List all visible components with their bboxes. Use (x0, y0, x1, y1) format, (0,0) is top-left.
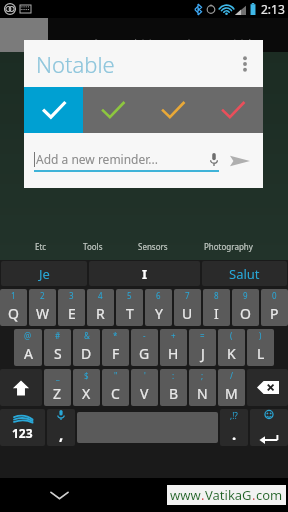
staticText: 0 (272, 290, 277, 301)
button[interactable]: Priority (24, 87, 83, 133)
staticText: - (143, 330, 146, 341)
button[interactable]: 5 (116, 289, 143, 326)
staticText: 123 (12, 425, 33, 441)
button[interactable]: 4 (87, 289, 114, 326)
staticText: ) (259, 330, 262, 341)
button[interactable]: _ (44, 369, 71, 406)
staticText: Add a new reminder... (36, 151, 210, 167)
staticText: Tools (83, 241, 103, 252)
button[interactable]: - (131, 329, 158, 366)
button[interactable]: & (73, 329, 100, 366)
button[interactable]: Je (1, 261, 87, 286)
button[interactable]: # (44, 329, 71, 366)
staticText: / (230, 370, 233, 381)
staticText: = (200, 330, 205, 341)
staticText: P (270, 304, 279, 323)
button[interactable]: / (218, 369, 245, 406)
staticText: 4 (98, 290, 103, 301)
staticText: _ (56, 370, 60, 381)
staticText: + (171, 330, 176, 341)
staticText: K (227, 344, 236, 363)
button[interactable]: Priority (203, 87, 263, 133)
staticText: 6 (156, 290, 161, 301)
staticText: L (257, 344, 265, 363)
staticText: J (201, 344, 205, 363)
staticText: 3 (69, 290, 74, 301)
staticText: . (232, 424, 237, 444)
button[interactable]: 0 (261, 289, 288, 326)
button[interactable]: Hide keyboard (44, 480, 74, 510)
staticText: Y (155, 304, 163, 323)
staticText: T (126, 304, 134, 323)
button[interactable]: Priority (83, 87, 143, 133)
staticText: 8 (214, 290, 219, 301)
button[interactable]: Shift (0, 369, 42, 406)
staticText: " (114, 370, 118, 381)
staticText: ( (230, 330, 233, 341)
button[interactable]: 1 (0, 289, 27, 326)
staticText: X (82, 384, 91, 403)
button[interactable]: = (189, 329, 216, 366)
staticText: ,!? (230, 410, 238, 421)
staticText: www (170, 486, 201, 504)
staticText: H (168, 344, 179, 363)
staticText: S (54, 344, 62, 363)
staticText: U (182, 304, 193, 323)
button[interactable]: , (47, 409, 75, 446)
staticText: VatikaG (205, 486, 252, 504)
staticText: Z (53, 384, 62, 403)
staticText: V (140, 384, 149, 403)
staticText: B (169, 384, 179, 403)
button[interactable]: More options (231, 50, 259, 78)
button[interactable]: 8 (203, 289, 230, 326)
button[interactable]: 7 (174, 289, 201, 326)
button[interactable]: ) (247, 329, 274, 366)
button[interactable]: 123 (0, 409, 45, 446)
button[interactable]: : (160, 369, 187, 406)
button[interactable]: " (102, 369, 129, 406)
staticText: @ (24, 330, 32, 341)
staticText: . (201, 486, 205, 504)
button[interactable]: $ (73, 369, 100, 406)
staticText: I (142, 265, 148, 283)
button[interactable]: 3 (58, 289, 85, 326)
staticText: G (139, 344, 150, 363)
button[interactable]: Priority (143, 87, 203, 133)
button[interactable]: 2 (29, 289, 56, 326)
staticText: Notable (36, 49, 115, 79)
staticText: R (96, 304, 105, 323)
button[interactable]: @ (14, 329, 42, 366)
button[interactable]: 9 (232, 289, 259, 326)
button[interactable]: Backspace (247, 369, 288, 406)
staticText: Q (8, 304, 19, 323)
staticText: M (225, 384, 238, 403)
staticText: Etc (35, 241, 47, 252)
button[interactable]: ' (131, 369, 158, 406)
staticText: Photography (204, 241, 253, 252)
staticText: 1 (11, 290, 16, 301)
staticText: , (59, 424, 64, 444)
button[interactable]: 6 (145, 289, 172, 326)
button[interactable]: Salut (202, 261, 287, 286)
staticText: 7 (185, 290, 190, 301)
staticText: : (172, 370, 175, 381)
button[interactable]: Enter (250, 409, 288, 446)
button[interactable]: Send (227, 148, 253, 174)
button[interactable]: * (102, 329, 129, 366)
button[interactable]: + (160, 329, 187, 366)
staticText: O (240, 304, 251, 323)
button[interactable]: ,!? (220, 409, 248, 446)
button[interactable]: I (89, 261, 200, 286)
staticText: 2 (40, 290, 45, 301)
staticText: 9 (243, 290, 248, 301)
button[interactable]: ( (218, 329, 245, 366)
button[interactable]: Add a new reminder... (34, 151, 219, 172)
staticText: I (214, 304, 219, 323)
staticText: 2:13 (261, 1, 285, 17)
staticText: com (256, 486, 283, 504)
button[interactable]: ; (189, 369, 216, 406)
staticText: * (113, 330, 118, 341)
staticText: Salut (229, 265, 260, 283)
staticText: E (68, 304, 76, 323)
